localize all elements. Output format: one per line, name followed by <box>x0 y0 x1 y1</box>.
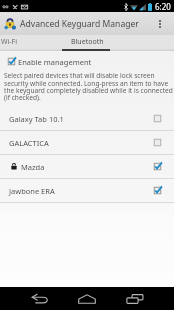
button[interactable]: Back <box>23 287 57 310</box>
button[interactable]: Home <box>70 287 104 310</box>
staticText: Mazda <box>21 162 45 172</box>
staticText: Advanced Keyguard Manager <box>20 18 139 30</box>
staticText: Wi-Fi <box>1 37 18 47</box>
button[interactable]: Galaxy Tab 10.1 <box>0 107 174 130</box>
staticText: Jawbone ERA <box>9 186 55 196</box>
button[interactable]: GALACTICA <box>0 131 174 154</box>
button[interactable]: Mazda <box>0 155 174 178</box>
button[interactable]: Bluetooth <box>63 35 111 51</box>
staticText: Galaxy Tab 10.1 <box>9 114 64 124</box>
staticText: GALACTICA <box>9 138 49 148</box>
button[interactable]: Jawbone ERA <box>0 179 174 202</box>
staticText: Bluetooth <box>71 37 104 47</box>
button[interactable]: More options <box>159 20 161 28</box>
button[interactable]: Enable management <box>0 55 174 68</box>
button[interactable]: Recent apps <box>118 287 152 310</box>
staticText: Enable management <box>18 57 92 67</box>
staticText: Select paired devices that will disable … <box>4 71 173 102</box>
button[interactable]: Wi-Fi <box>0 35 40 51</box>
staticText: 6:20 <box>155 1 171 12</box>
